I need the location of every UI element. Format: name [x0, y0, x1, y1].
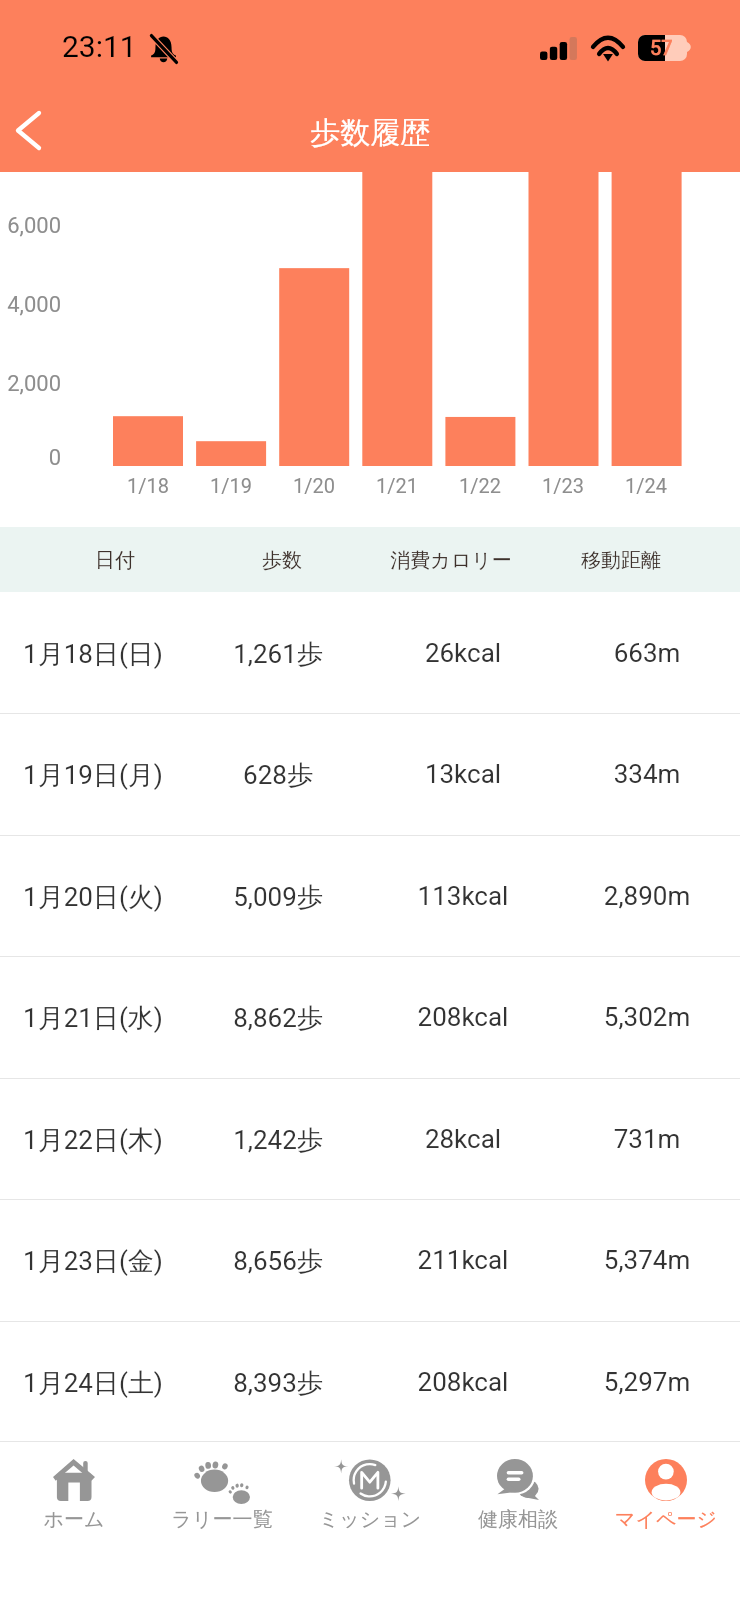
staticText: マイページ: [592, 1507, 740, 1532]
staticText: ミッション: [296, 1507, 444, 1532]
staticText: 歩数: [162, 548, 402, 573]
staticText: ラリー一覧: [148, 1507, 296, 1532]
staticText: 8,393歩: [158, 1367, 398, 1400]
button[interactable]: ミッション: [296, 1441, 444, 1601]
button[interactable]: 1月18日(日): [0, 592, 740, 713]
staticText: 1/24: [586, 474, 706, 497]
staticText: 334m: [527, 759, 740, 789]
staticText: 1月18日(日): [0, 638, 213, 671]
staticText: 健康相談: [444, 1507, 592, 1532]
button[interactable]: 1月23日(金): [0, 1199, 740, 1320]
staticText: 消費カロリー: [331, 548, 571, 573]
button[interactable]: マイページ: [592, 1441, 740, 1601]
staticText: 211kcal: [343, 1245, 583, 1275]
staticText: 2,890m: [527, 881, 740, 911]
staticText: 1月20日(火): [0, 881, 213, 914]
staticText: 28kcal: [343, 1124, 583, 1154]
staticText: 26kcal: [343, 638, 583, 668]
staticText: 1/20: [254, 474, 374, 497]
staticText: 208kcal: [343, 1367, 583, 1397]
staticText: 6,000: [0, 213, 61, 239]
staticText: 628歩: [158, 759, 398, 792]
staticText: 1月23日(金): [0, 1245, 213, 1278]
staticText: ホーム: [0, 1507, 148, 1532]
staticText: 13kcal: [343, 759, 583, 789]
staticText: 2,000: [0, 371, 61, 397]
staticText: 208kcal: [343, 1002, 583, 1032]
staticText: 1月21日(水): [0, 1002, 213, 1035]
staticText: 1月22日(木): [0, 1124, 213, 1157]
staticText: 8,862歩: [158, 1002, 398, 1035]
staticText: 歩数履歴: [0, 114, 740, 152]
staticText: 663m: [527, 638, 740, 668]
staticText: 23:11: [62, 29, 137, 64]
staticText: 5,297m: [527, 1367, 740, 1397]
staticText: 5,302m: [527, 1002, 740, 1032]
staticText: 1,261歩: [158, 638, 398, 671]
staticText: 1,242歩: [158, 1124, 398, 1157]
staticText: 1月24日(土): [0, 1367, 213, 1400]
staticText: 1/19: [171, 474, 291, 497]
staticText: 1/23: [503, 474, 623, 497]
staticText: 1/18: [88, 474, 208, 497]
staticText: 4,000: [0, 292, 61, 318]
staticText: 日付: [0, 548, 235, 573]
staticText: 5,009歩: [158, 881, 398, 914]
button[interactable]: ホーム: [0, 1441, 148, 1601]
button[interactable]: Back: [0, 102, 56, 158]
staticText: 0: [0, 445, 61, 471]
staticText: 731m: [527, 1124, 740, 1154]
staticText: 移動距離: [501, 548, 740, 573]
staticText: 1/22: [420, 474, 540, 497]
staticText: 113kcal: [343, 881, 583, 911]
button[interactable]: 1月21日(水): [0, 956, 740, 1077]
staticText: 5,374m: [527, 1245, 740, 1275]
button[interactable]: 1月22日(木): [0, 1078, 740, 1199]
button[interactable]: ラリー一覧: [148, 1441, 296, 1601]
button[interactable]: 健康相談: [444, 1441, 592, 1601]
button[interactable]: 1月19日(月): [0, 713, 740, 834]
staticText: 1月19日(月): [0, 759, 213, 792]
button[interactable]: 1月20日(火): [0, 835, 740, 956]
staticText: 8,656歩: [158, 1245, 398, 1278]
staticText: 57: [650, 36, 673, 59]
button[interactable]: 1月24日(土): [0, 1321, 740, 1442]
staticText: 1/21: [337, 474, 457, 497]
